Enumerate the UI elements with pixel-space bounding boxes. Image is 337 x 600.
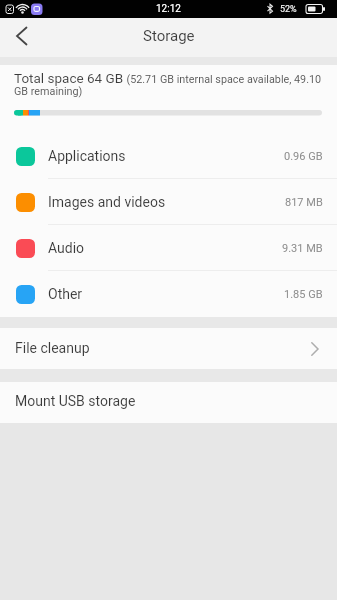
staticText: File cleanup: [15, 340, 90, 356]
button[interactable]: Audio: [0, 225, 337, 271]
staticText: 817 MB: [285, 196, 323, 209]
staticText: Mount USB storage: [15, 393, 136, 409]
staticText: 1.85 GB: [284, 288, 323, 301]
staticText: Applications: [48, 148, 126, 164]
button[interactable]: Mount USB storage: [0, 382, 337, 423]
staticText: Audio: [48, 240, 85, 256]
staticText: Total space 64 GB (52.71 GB internal spa…: [14, 70, 322, 98]
button[interactable]: [0, 18, 40, 57]
button[interactable]: Applications: [0, 133, 337, 179]
staticText: 0.96 GB: [284, 150, 323, 163]
staticText: 52%: [280, 4, 297, 15]
staticText: 12:12: [156, 3, 181, 15]
button[interactable]: File cleanup: [0, 328, 337, 369]
button[interactable]: Other: [0, 271, 337, 317]
staticText: Images and videos: [48, 194, 166, 210]
staticText: Other: [48, 286, 83, 302]
staticText: 9.31 MB: [282, 242, 323, 255]
staticText: Storage: [143, 27, 195, 45]
button[interactable]: Images and videos: [0, 179, 337, 225]
